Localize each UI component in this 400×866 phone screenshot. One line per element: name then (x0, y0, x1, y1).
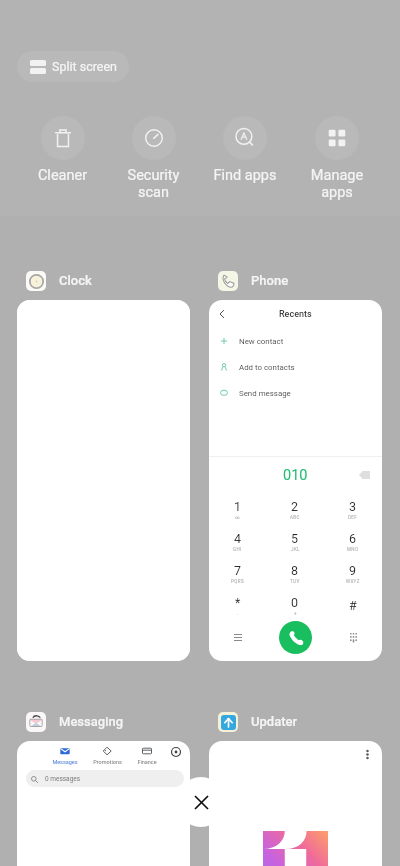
button[interactable]: Split screen (17, 51, 129, 82)
staticText: Clock (59, 273, 92, 288)
staticText: Updater (251, 714, 298, 729)
staticText: + (294, 611, 297, 616)
staticText: Promotions (93, 759, 122, 765)
staticText: Manage apps (291, 167, 383, 201)
button[interactable]: Messages (17, 741, 190, 866)
staticText: . (237, 611, 239, 616)
staticText: * (235, 595, 241, 610)
staticText: 2 (291, 499, 299, 514)
staticText: Phone (251, 273, 289, 288)
button[interactable]: # (324, 589, 382, 621)
button[interactable]: 6 (324, 525, 382, 557)
button[interactable]: More options (359, 746, 375, 762)
staticText: 3 (349, 499, 357, 514)
staticText: Messages (52, 759, 78, 765)
staticText: PQRS (231, 579, 244, 584)
staticText: New contact (239, 337, 284, 346)
staticText: DEF (348, 515, 358, 520)
button[interactable] (17, 300, 190, 661)
staticText: ∞ (235, 515, 241, 520)
staticText: WXYZ (346, 579, 360, 584)
staticText: MNO (347, 547, 359, 552)
button[interactable]: 0 (266, 589, 324, 621)
button[interactable]: Settings (167, 743, 185, 761)
button[interactable]: Find apps (199, 116, 291, 184)
staticText: Add to contacts (239, 363, 295, 372)
staticText: 1 (234, 499, 242, 514)
staticText: 5 (291, 531, 299, 546)
button[interactable]: More options (209, 741, 382, 866)
staticText: Finance (137, 759, 157, 765)
other: Keypad (350, 633, 357, 642)
button[interactable]: * (209, 589, 266, 621)
staticText: 4 (234, 531, 242, 546)
button[interactable]: 9 (324, 557, 382, 589)
staticText: Recents (279, 309, 312, 320)
staticText: 7 (234, 563, 242, 578)
button[interactable]: Send message (209, 380, 382, 406)
staticText: Messaging (59, 714, 124, 729)
staticText: 0 (291, 595, 299, 610)
staticText: Cleaner (17, 167, 108, 184)
button[interactable]: Close all (176, 777, 226, 827)
staticText: Send message (239, 389, 291, 398)
button[interactable]: 3 (324, 493, 382, 525)
staticText: GHI (233, 547, 242, 552)
button[interactable]: 1 (209, 493, 266, 525)
staticText: 0 messages (45, 775, 81, 783)
staticText: 010 (283, 467, 308, 484)
button[interactable]: Cleaner (17, 116, 108, 184)
staticText: Security scan (108, 167, 199, 201)
staticText: 8 (291, 563, 299, 578)
staticText: ABC (290, 515, 300, 520)
button[interactable]: 4 (209, 525, 266, 557)
staticText: Split screen (52, 59, 117, 74)
button[interactable]: 5 (266, 525, 324, 557)
staticText: 6 (349, 531, 357, 546)
button[interactable]: 7 (209, 557, 266, 589)
button[interactable]: Call (279, 621, 312, 654)
staticText: 9 (349, 563, 357, 578)
button[interactable]: Add to contacts (209, 354, 382, 380)
button[interactable]: 0 messages (26, 770, 184, 787)
button[interactable]: 2 (266, 493, 324, 525)
button[interactable]: Manage apps (291, 116, 383, 201)
button[interactable]: 8 (266, 557, 324, 589)
button[interactable]: New contact (209, 328, 382, 354)
staticText: TUV (290, 579, 300, 584)
button[interactable]: Security scan (108, 116, 199, 201)
button[interactable]: Back (214, 306, 230, 322)
button[interactable]: Back (209, 300, 382, 661)
button[interactable]: Promotions (87, 746, 127, 765)
button[interactable]: Finance (127, 746, 167, 765)
staticText: JKL (291, 547, 300, 552)
other: Menu (234, 634, 242, 641)
button[interactable]: Messages (45, 746, 85, 765)
staticText: # (349, 598, 357, 613)
staticText: Find apps (199, 167, 291, 184)
